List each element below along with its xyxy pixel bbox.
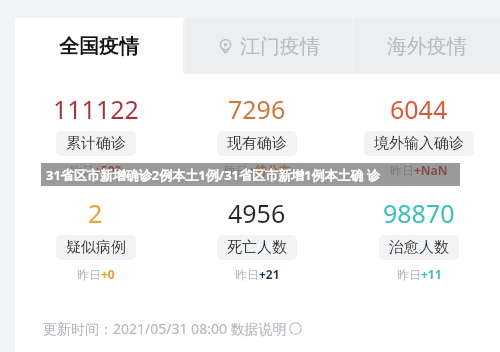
staticText: 江门疫情 bbox=[240, 34, 320, 59]
staticText: 昨日 bbox=[390, 163, 414, 178]
button[interactable]: 海外疫情 bbox=[354, 18, 500, 74]
staticText: +11 bbox=[421, 266, 442, 282]
button[interactable]: 7296 bbox=[176, 92, 338, 178]
staticText: +NaN bbox=[414, 162, 448, 178]
staticText: 疑似病例 bbox=[66, 238, 126, 257]
button[interactable]: 98870 bbox=[338, 196, 500, 282]
staticText: 昨日 bbox=[77, 267, 101, 282]
staticText: 昨日 bbox=[235, 267, 259, 282]
button[interactable]: 更新时间：2021/05/31 08:00 数据说明 bbox=[43, 319, 500, 338]
staticText: 现有确诊 bbox=[227, 134, 287, 153]
staticText: 2 bbox=[88, 196, 103, 230]
staticText: 111122 bbox=[53, 92, 139, 126]
button[interactable]: 4956 bbox=[176, 196, 338, 282]
staticText: 98870 bbox=[383, 196, 455, 230]
staticText: 治愈人数 bbox=[389, 238, 449, 257]
button[interactable]: 全国疫情 bbox=[15, 18, 183, 74]
staticText: +待公布 bbox=[248, 162, 291, 178]
staticText: +0 bbox=[101, 266, 115, 282]
staticText: 7296 bbox=[228, 92, 286, 126]
other: Location bbox=[218, 39, 233, 54]
staticText: 昨日 bbox=[397, 267, 421, 282]
button[interactable]: 2 bbox=[15, 196, 176, 282]
staticText: 31省区市新增确诊2例本土1例/31省区市新增1例本土确 诊 bbox=[46, 166, 380, 184]
staticText: 6044 bbox=[390, 92, 448, 126]
staticText: 全国疫情 bbox=[59, 34, 139, 59]
staticText: 海外疫情 bbox=[387, 34, 467, 59]
staticText: +21 bbox=[259, 266, 280, 282]
staticText: 境外输入确诊 bbox=[374, 134, 464, 153]
staticText: 更新时间：2021/05/31 08:00 数据说明 bbox=[43, 319, 287, 338]
other: Data info bbox=[289, 322, 302, 335]
staticText: 昨日 bbox=[224, 163, 248, 178]
staticText: 4956 bbox=[228, 196, 286, 230]
button[interactable]: 111122 bbox=[15, 92, 176, 178]
button[interactable]: Location bbox=[185, 18, 352, 74]
staticText: 死亡人数 bbox=[227, 238, 287, 257]
staticText: 累计确诊 bbox=[66, 134, 126, 153]
staticText: +503 bbox=[94, 162, 122, 178]
staticText: 昨日 bbox=[70, 163, 94, 178]
button[interactable]: 6044 bbox=[338, 92, 500, 178]
